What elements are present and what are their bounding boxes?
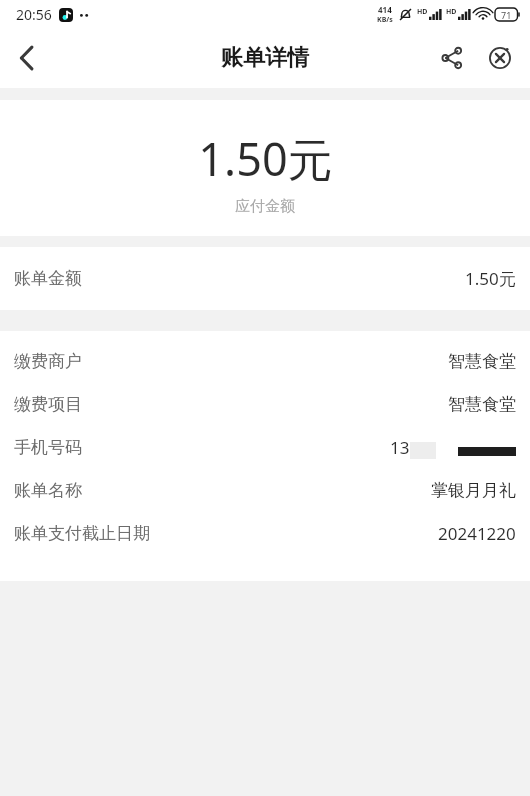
staticText: 账单支付截止日期 xyxy=(14,523,150,544)
staticText: 20:56 xyxy=(16,5,52,24)
button[interactable]: 账单支付截止日期 xyxy=(0,512,530,555)
staticText: 账单名称 xyxy=(14,480,82,501)
button[interactable]: 缴费项目 xyxy=(0,383,530,426)
button[interactable]: 返回 xyxy=(0,32,52,84)
staticText: 账单金额 xyxy=(14,268,82,289)
button[interactable]: 缴费商户 xyxy=(0,340,530,383)
staticText: 1.50元 xyxy=(465,267,516,290)
staticText: HD xyxy=(446,7,457,17)
staticText: HD xyxy=(417,7,428,17)
button[interactable]: 分享 xyxy=(428,34,476,82)
button[interactable]: 手机号码 xyxy=(0,426,530,469)
staticText: 手机号码 xyxy=(14,437,82,458)
button[interactable]: 账单名称 xyxy=(0,469,530,512)
staticText: 缴费项目 xyxy=(14,394,82,415)
button[interactable]: 账单金额 xyxy=(0,247,530,310)
staticText: 20241220 xyxy=(438,522,516,545)
staticText: 应付金额 xyxy=(235,197,295,216)
button[interactable]: 关闭 xyxy=(476,34,524,82)
staticText: 智慧食堂 xyxy=(448,351,516,372)
staticText: 13 xyxy=(390,436,410,459)
staticText: KB/s xyxy=(377,15,393,25)
staticText: 414 xyxy=(378,4,392,15)
staticText: 71 xyxy=(501,9,512,21)
staticText: 掌银月月礼 xyxy=(431,480,516,501)
staticText: 账单详情 xyxy=(221,44,309,72)
staticText: 智慧食堂 xyxy=(448,394,516,415)
staticText: 缴费商户 xyxy=(14,351,82,372)
staticText: 1.50元 xyxy=(198,128,333,189)
